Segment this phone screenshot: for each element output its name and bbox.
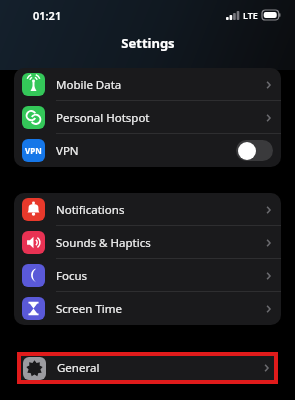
button[interactable]: Notifications: [14, 193, 281, 226]
staticText: Notifications: [56, 202, 125, 218]
staticText: Personal Hotspot: [56, 110, 150, 126]
button[interactable]: VPN toggle: [236, 140, 273, 161]
staticText: Sounds & Haptics: [56, 235, 151, 251]
button[interactable]: Focus: [14, 259, 281, 292]
staticText: VPN: [56, 143, 79, 159]
button[interactable]: Screen Time: [14, 292, 281, 325]
staticText: Screen Time: [56, 301, 123, 317]
staticText: Focus: [56, 268, 88, 284]
button[interactable]: Personal Hotspot: [14, 101, 281, 134]
button[interactable]: VPN: [14, 134, 281, 167]
staticText: Settings: [121, 34, 175, 52]
staticText: VPN: [25, 145, 42, 156]
staticText: Mobile Data: [56, 77, 122, 93]
button[interactable]: General: [17, 352, 278, 384]
staticText: General: [57, 360, 100, 376]
staticText: 01:21: [33, 8, 62, 23]
staticText: LTE: [243, 9, 258, 21]
button[interactable]: Sounds & Haptics: [14, 226, 281, 259]
button[interactable]: Mobile Data: [14, 68, 281, 101]
